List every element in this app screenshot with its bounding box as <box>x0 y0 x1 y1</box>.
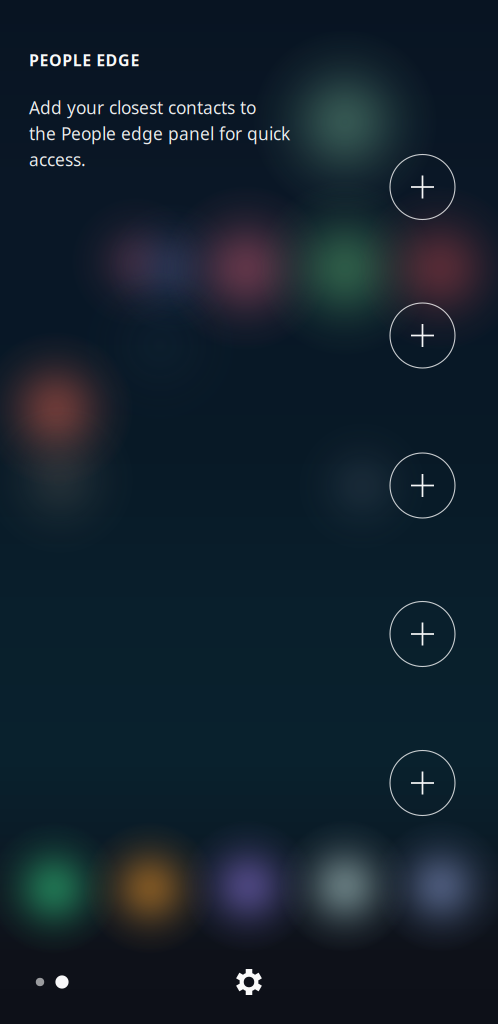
button[interactable]: Add contact <box>379 144 465 230</box>
staticText: PEOPLE EDGE <box>29 49 139 71</box>
button[interactable]: Add contact <box>379 442 465 528</box>
button[interactable]: Add contact <box>379 591 465 677</box>
staticText: the People edge panel for quick <box>29 122 290 145</box>
button[interactable]: People edge settings <box>226 959 272 1005</box>
staticText: Add your closest contacts to <box>29 96 256 119</box>
button[interactable]: Add contact <box>379 292 465 378</box>
staticText: access. <box>29 148 86 171</box>
button[interactable]: Add contact <box>379 740 465 826</box>
